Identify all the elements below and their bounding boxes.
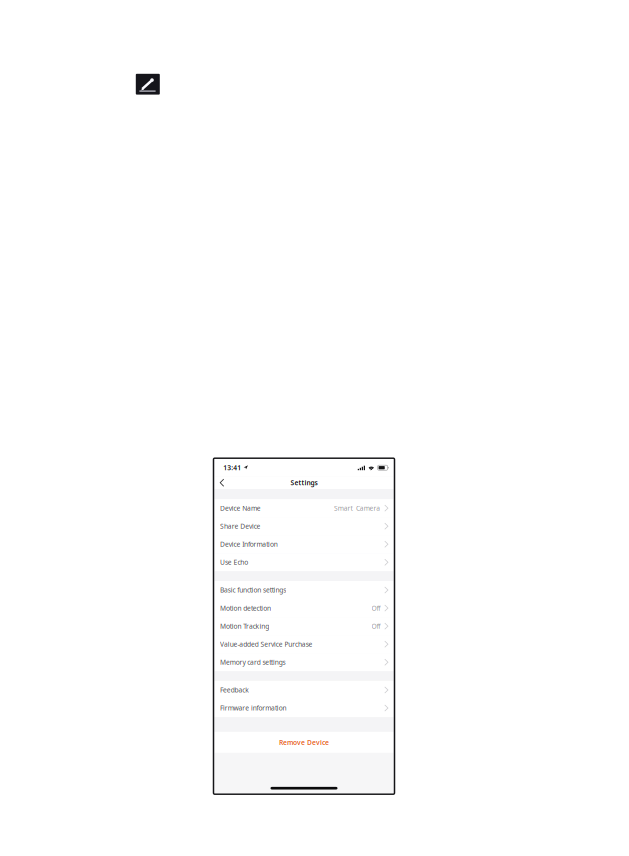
button[interactable]: Remove Device <box>214 732 394 753</box>
staticText: Motion Tracking <box>220 622 269 631</box>
button[interactable]: Device Information <box>214 535 394 553</box>
button[interactable]: Use Echo <box>214 553 394 571</box>
button[interactable]: Share Device <box>214 517 394 535</box>
staticText: Device Information <box>220 540 278 549</box>
staticText: Motion detection <box>220 604 271 612</box>
button[interactable]: Edit <box>136 74 160 95</box>
button[interactable]: Memory card settings <box>214 653 394 671</box>
staticText: Device Name <box>220 504 261 513</box>
button[interactable]: Device Name <box>214 499 394 517</box>
staticText: Use Echo <box>220 558 248 567</box>
staticText: Settings <box>290 478 317 487</box>
staticText: 13:41 <box>223 463 241 472</box>
staticText: Remove Device <box>279 738 329 747</box>
staticText: Value-added Service Purchase <box>220 640 313 649</box>
staticText: Off <box>372 604 380 612</box>
staticText: Firmware information <box>220 704 287 712</box>
staticText: Memory card settings <box>220 658 286 667</box>
staticText: Smart Camera <box>334 504 380 513</box>
staticText: Share Device <box>220 522 261 531</box>
staticText: Off <box>372 622 380 631</box>
button[interactable]: Firmware information <box>214 699 394 717</box>
button[interactable]: Basic function settings <box>214 581 394 599</box>
button[interactable]: Back <box>215 476 229 489</box>
button[interactable]: Feedback <box>214 681 394 699</box>
button[interactable]: Motion Tracking <box>214 617 394 635</box>
staticText: Basic function settings <box>220 586 286 594</box>
button[interactable]: Motion detection <box>214 599 394 617</box>
staticText: Feedback <box>220 685 249 694</box>
button[interactable]: Value-added Service Purchase <box>214 635 394 653</box>
